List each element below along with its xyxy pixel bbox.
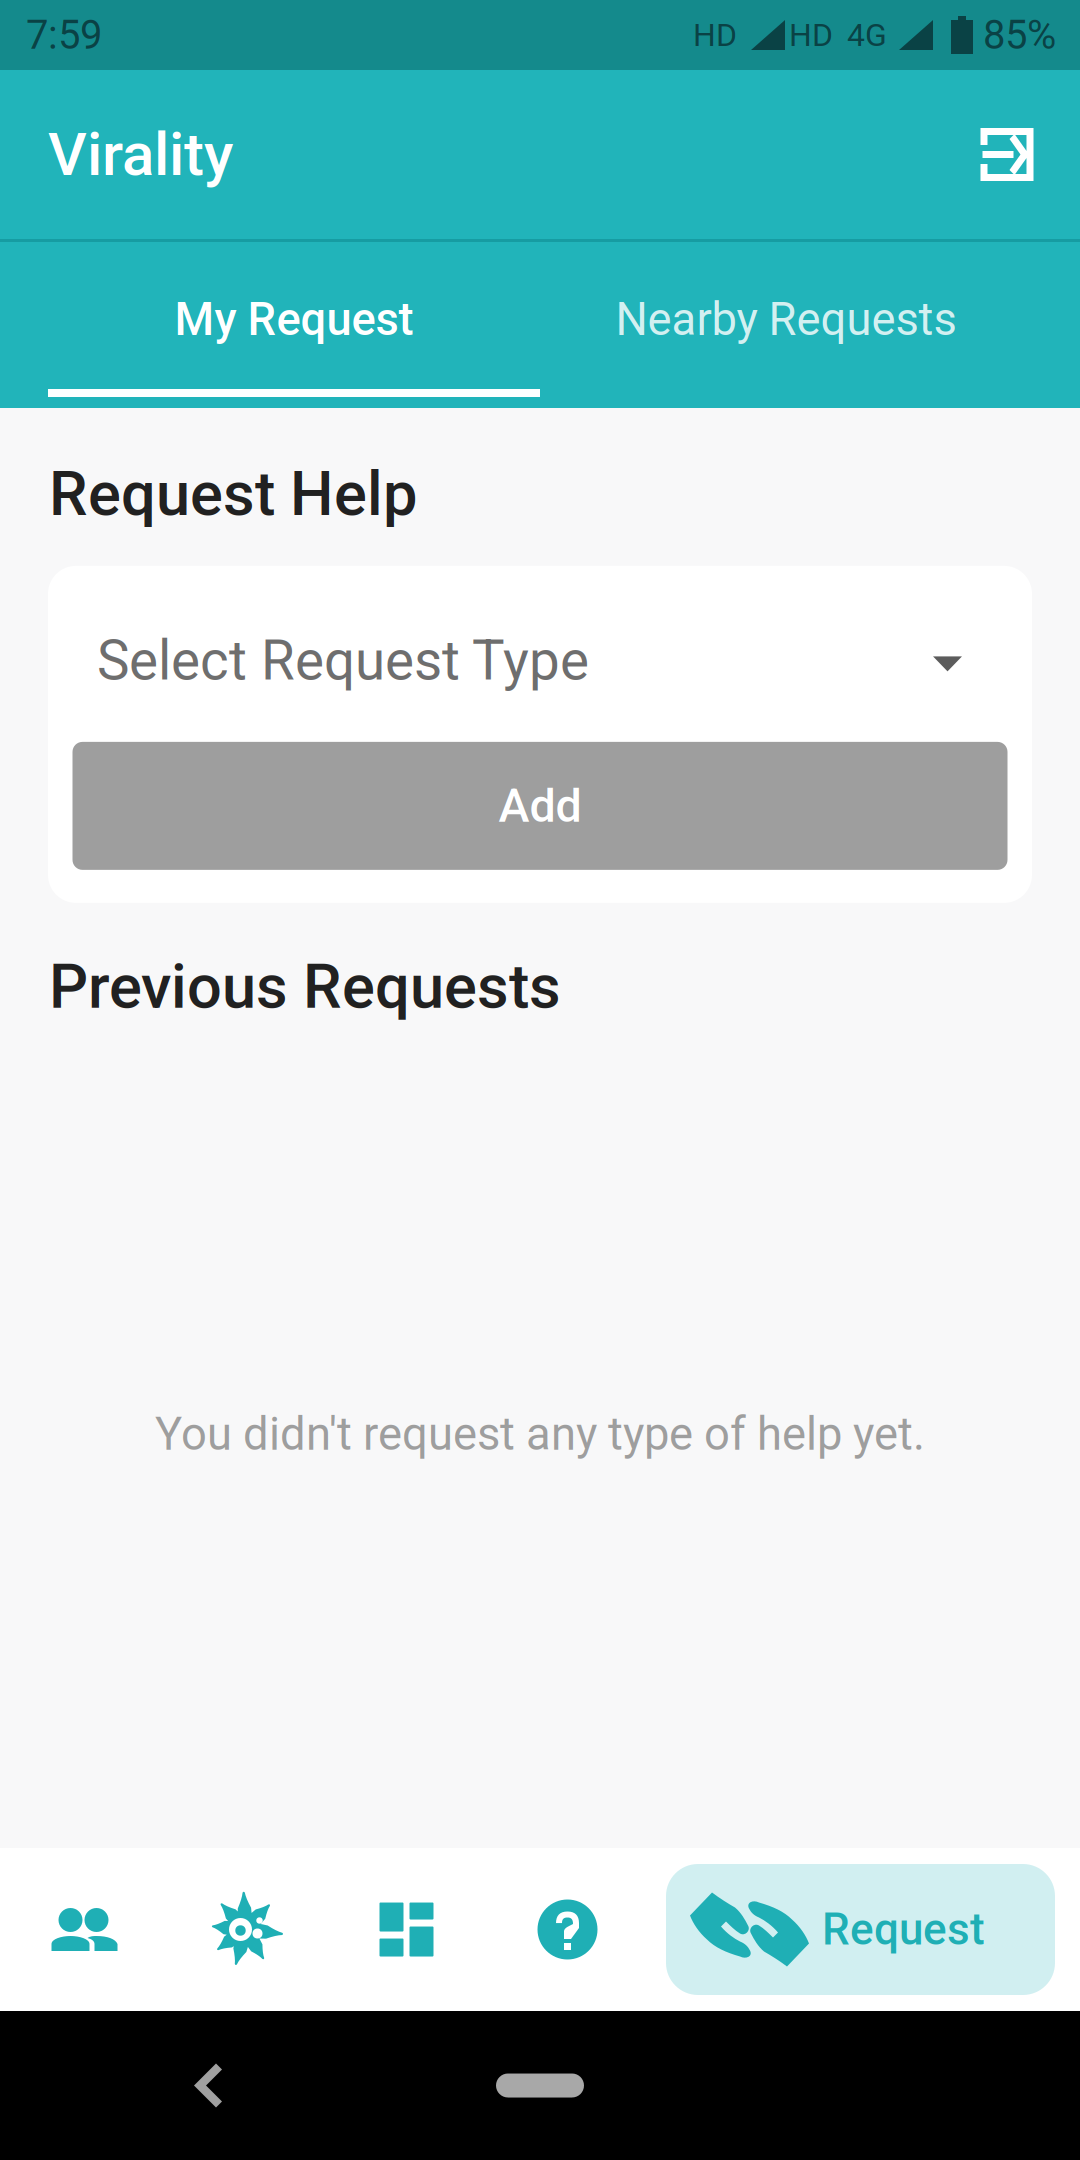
button[interactable]: Back xyxy=(148,2025,268,2145)
button[interactable]: Select Request Type xyxy=(48,566,1032,742)
button[interactable]: Dashboard xyxy=(326,1864,487,1995)
button[interactable]: Request xyxy=(666,1864,1055,1995)
staticText: 85% xyxy=(983,12,1056,58)
staticText: HD xyxy=(693,16,737,54)
staticText: Select Request Type xyxy=(97,629,589,693)
staticText: Previous Requests xyxy=(49,951,561,1023)
staticText: HD xyxy=(789,16,833,54)
button[interactable]: Add xyxy=(72,742,1007,870)
staticText: Add xyxy=(498,778,581,833)
staticText: Request xyxy=(822,1904,985,1955)
staticText: 4G xyxy=(847,16,887,54)
button[interactable]: My Request xyxy=(48,242,540,408)
staticText: 7:59 xyxy=(26,12,102,58)
staticText: My Request xyxy=(174,293,413,346)
staticText: Virality xyxy=(48,119,233,190)
button[interactable]: Nearby Requests xyxy=(540,242,1032,408)
button[interactable]: Log out xyxy=(947,94,1067,214)
button[interactable]: Help xyxy=(487,1864,648,1995)
staticText: Nearby Requests xyxy=(615,293,956,346)
staticText: You didn't request any type of help yet. xyxy=(155,1408,925,1461)
staticText: Request Help xyxy=(49,458,417,530)
button[interactable]: Cases xyxy=(165,1864,326,1995)
button[interactable]: Community xyxy=(4,1864,165,1995)
